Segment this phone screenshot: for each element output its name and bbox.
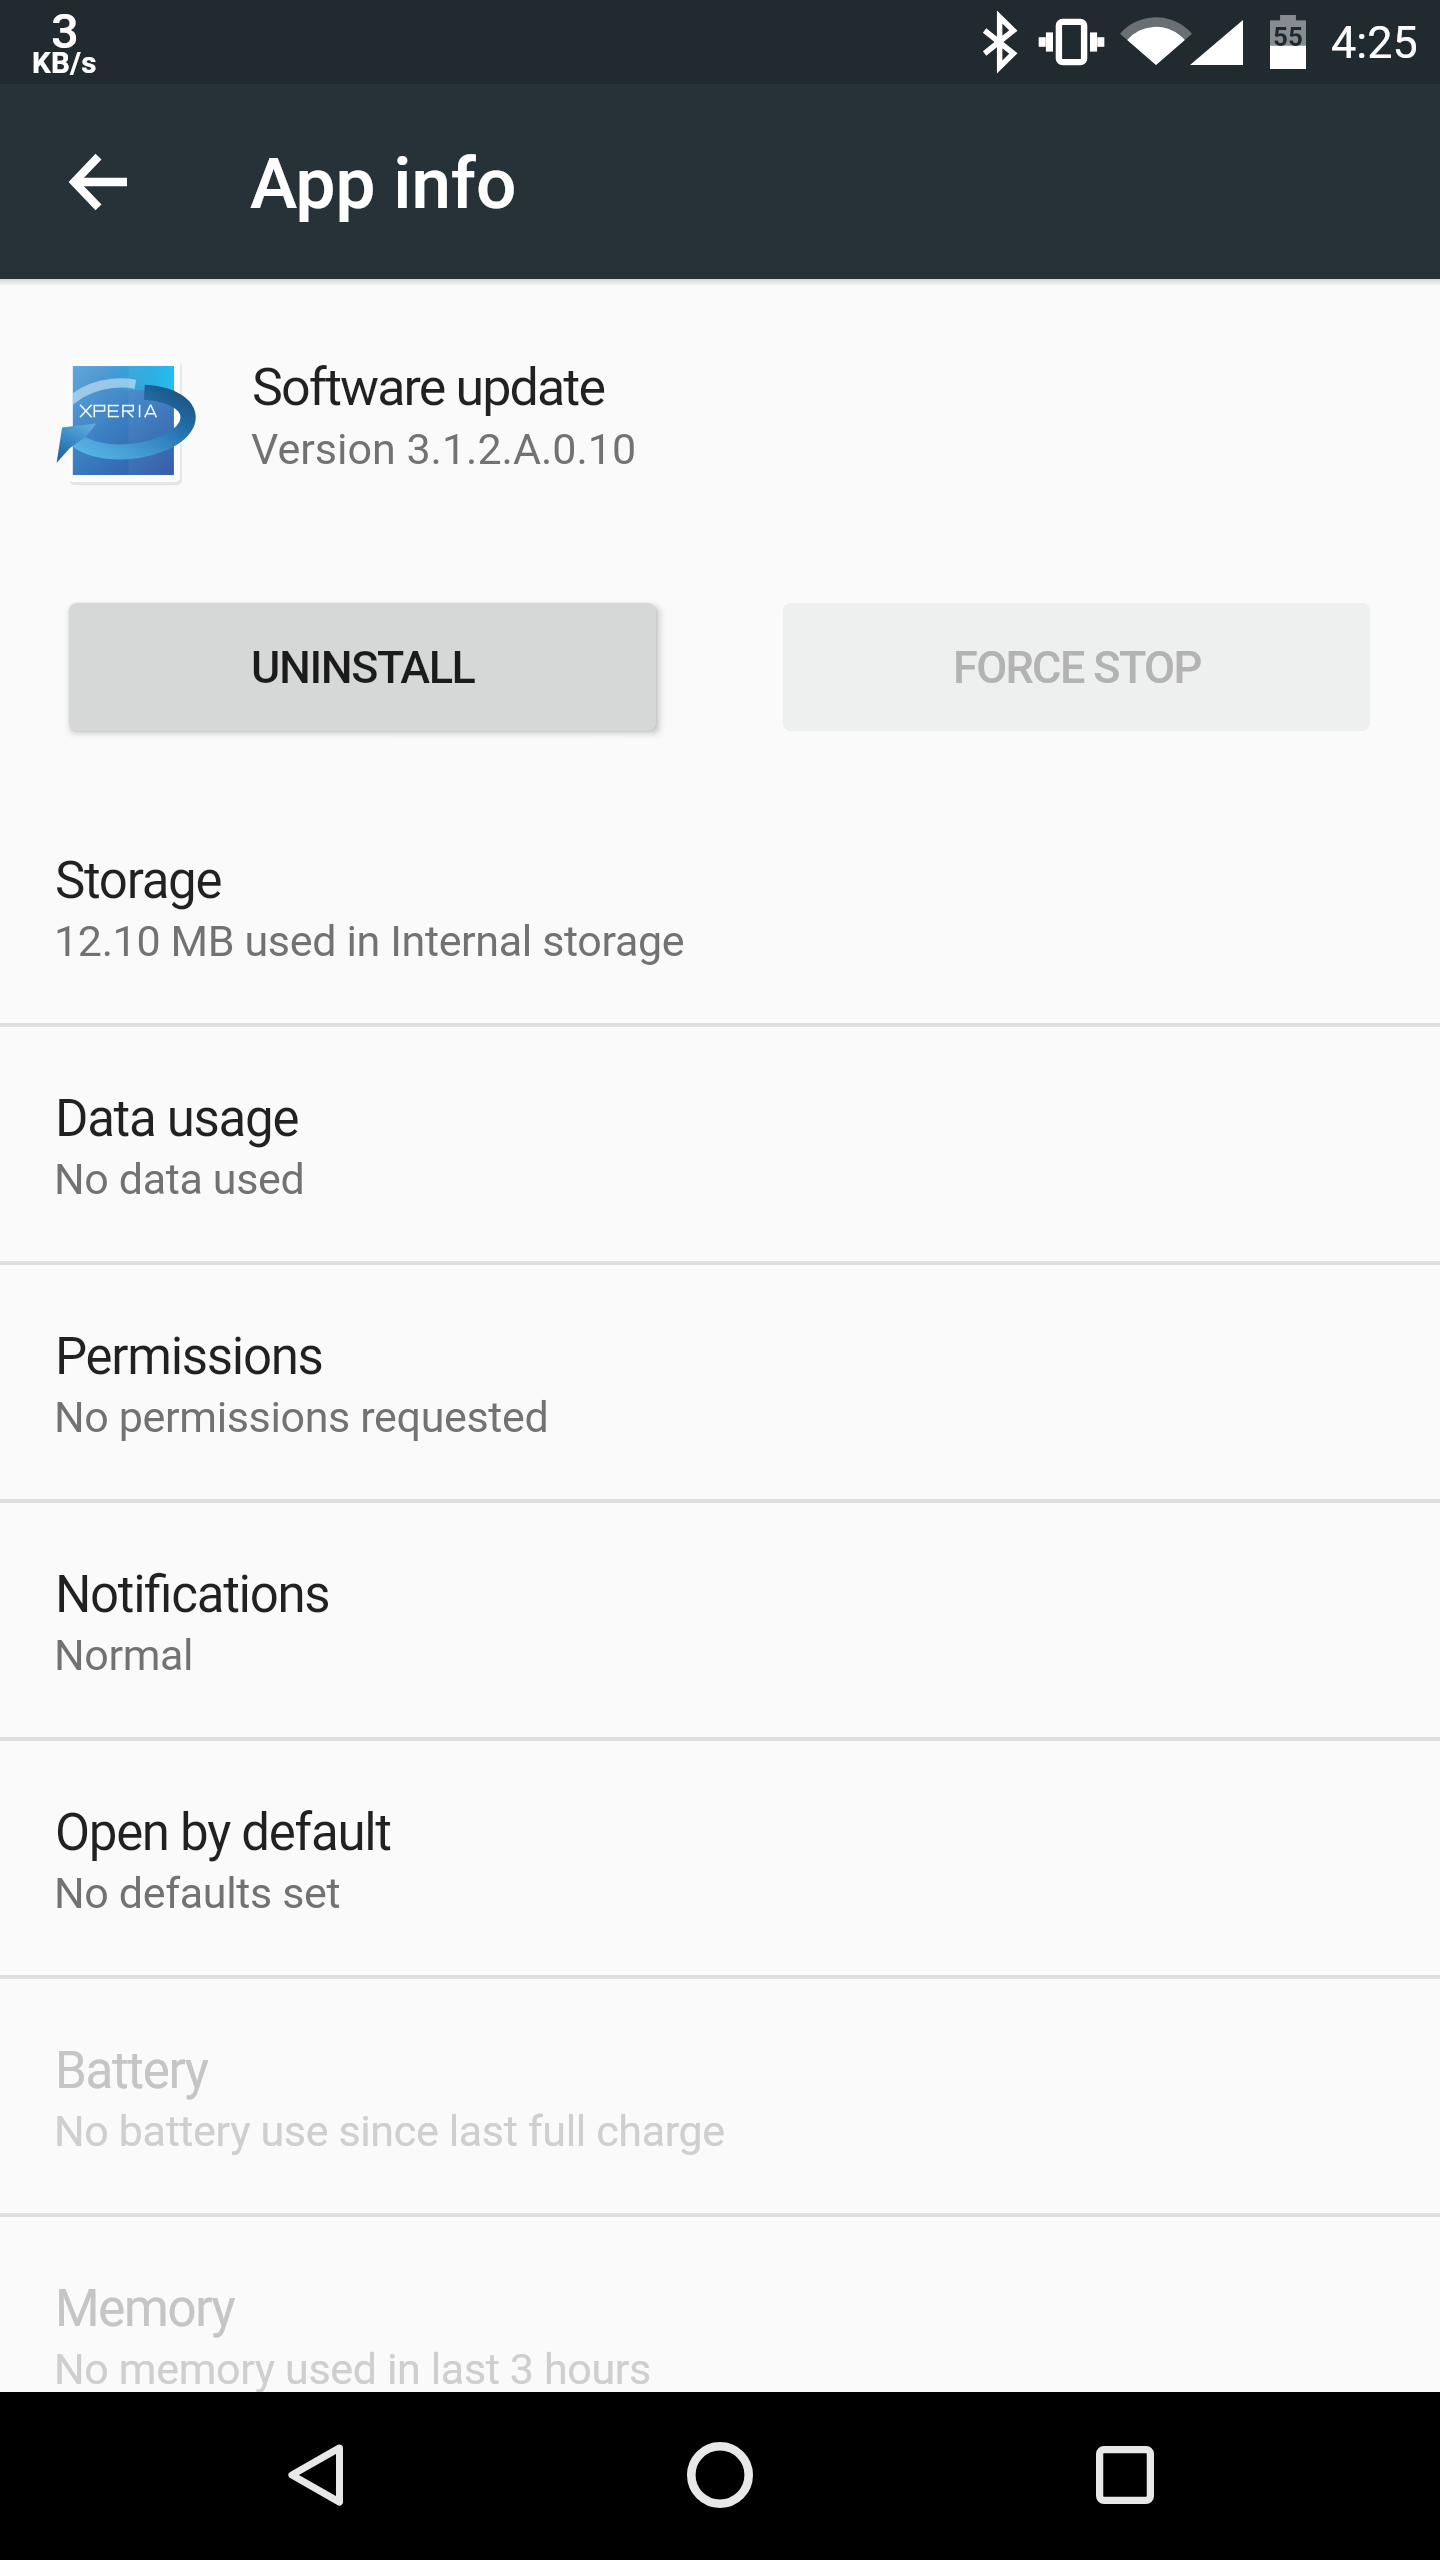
staticText: Battery [55, 2041, 208, 2101]
staticText: 12.10 MB used in Internal storage [54, 916, 685, 966]
staticText: App info [250, 142, 517, 225]
button[interactable]: FORCE STOP [783, 603, 1370, 731]
button[interactable]: Data usage [0, 1025, 1440, 1263]
staticText: No battery use since last full charge [54, 2106, 725, 2156]
button[interactable]: Memory [0, 2215, 1440, 2453]
staticText: Open by default [55, 1803, 391, 1863]
staticText: Data usage [55, 1089, 299, 1149]
staticText: 55 [1273, 22, 1303, 52]
button[interactable]: Battery [0, 1977, 1440, 2215]
staticText: UNINSTALL [251, 641, 475, 694]
staticText: Version 3.1.2.A.0.10 [251, 424, 637, 474]
staticText: No data used [54, 1154, 305, 1204]
staticText: FORCE STOP [953, 641, 1201, 694]
button[interactable]: Open by default [0, 1739, 1440, 1977]
button[interactable]: Recent apps [1096, 2446, 1154, 2504]
staticText: No defaults set [54, 1868, 341, 1918]
staticText: Permissions [55, 1327, 323, 1387]
button[interactable]: UNINSTALL [69, 603, 656, 731]
staticText: No permissions requested [54, 1392, 549, 1442]
staticText: Storage [55, 851, 222, 911]
button[interactable]: Back [287, 2443, 343, 2507]
staticText: KB/s [32, 46, 97, 81]
staticText: 3 [51, 3, 79, 60]
button[interactable]: Storage [0, 787, 1440, 1025]
button[interactable]: Home [687, 2442, 753, 2508]
staticText: Memory [55, 2279, 235, 2339]
button[interactable]: Navigate up [28, 112, 168, 252]
button[interactable]: Notifications [0, 1501, 1440, 1739]
staticText: Normal [54, 1630, 194, 1680]
staticText: 4:25 [1331, 16, 1418, 69]
staticText: Software update [252, 357, 605, 418]
button[interactable]: Permissions [0, 1263, 1440, 1501]
staticText: Notifications [55, 1565, 330, 1625]
staticText: No memory used in last 3 hours [54, 2344, 651, 2394]
